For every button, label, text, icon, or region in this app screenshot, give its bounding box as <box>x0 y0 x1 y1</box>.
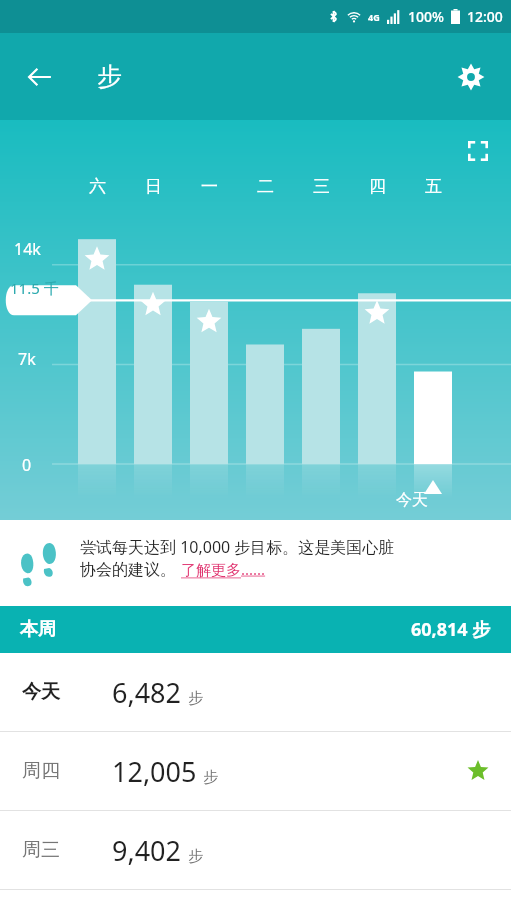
staticText: 14k <box>14 238 41 260</box>
staticText: 尝试每天达到 10,000 步目标。这是美国心脏 <box>80 536 395 558</box>
button[interactable]: 今天 <box>0 653 511 731</box>
staticText: 协会的建议。 <box>80 558 181 580</box>
staticText: 今天 <box>22 680 60 704</box>
staticText: 周三 <box>22 838 60 862</box>
staticText: 步 <box>188 847 203 866</box>
button[interactable]: 周四 <box>0 732 511 810</box>
staticText: 日 <box>145 176 162 197</box>
button[interactable]: 周三 <box>0 811 511 889</box>
staticText: 三 <box>313 176 330 197</box>
staticText: 60,814 步 <box>411 617 491 642</box>
button[interactable]: Settings <box>445 51 497 103</box>
staticText: 12,005 <box>112 753 197 790</box>
staticText: 12:00 <box>467 7 503 26</box>
staticText: 今天 <box>396 490 428 510</box>
staticText: 四 <box>369 176 386 197</box>
staticText: 4G <box>368 11 380 23</box>
button[interactable]: Fullscreen <box>455 128 501 174</box>
staticText: 11.5 千 <box>10 278 59 298</box>
staticText: 本周 <box>20 618 56 641</box>
staticText: 0 <box>22 454 32 476</box>
staticText: 六 <box>89 176 106 197</box>
other: Goal reached <box>467 760 489 782</box>
staticText: 9,402 <box>112 832 182 869</box>
staticText: 7k <box>18 348 36 370</box>
button[interactable]: 本周 <box>0 606 511 653</box>
staticText: 周四 <box>22 759 60 783</box>
staticText: 步 <box>188 689 203 708</box>
staticText: 五 <box>425 176 442 197</box>
staticText: 100% <box>408 7 444 26</box>
staticText: 步 <box>203 768 218 787</box>
button[interactable]: 了解更多...... <box>181 559 266 579</box>
staticText: 二 <box>257 176 274 197</box>
button[interactable]: 尝试每天达到 10,000 步目标。这是美国心脏 <box>0 520 511 606</box>
staticText: 步 <box>97 61 122 92</box>
staticText: 6,482 <box>112 674 182 711</box>
staticText: 一 <box>201 176 218 197</box>
button[interactable]: Back <box>14 51 66 103</box>
